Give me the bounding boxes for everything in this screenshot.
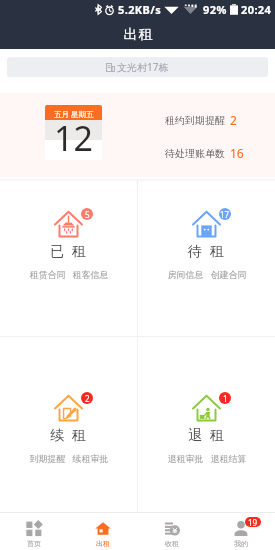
button[interactable]: 五月 星期五 xyxy=(45,105,102,160)
staticText: 退租审批 退租结算 xyxy=(167,452,247,464)
staticText: 待处理账单数 xyxy=(165,147,225,160)
staticText: 16 xyxy=(230,145,244,161)
staticText: 19 xyxy=(248,517,258,527)
staticText: 首页 xyxy=(27,539,41,548)
staticText: 92% xyxy=(203,2,227,17)
staticText: 租赁合同 租客信息 xyxy=(29,268,109,280)
staticText: 退 租 xyxy=(188,425,226,444)
staticText: 12 xyxy=(54,115,93,160)
staticText: 1 xyxy=(223,393,228,404)
button[interactable]: 19 xyxy=(206,513,275,550)
button[interactable]: 17 xyxy=(138,181,275,336)
button[interactable]: 2 xyxy=(0,337,137,512)
staticText: 续 租 xyxy=(50,425,88,444)
staticText: 5 xyxy=(85,209,90,220)
staticText: 我的 xyxy=(234,539,248,548)
staticText: 已 租 xyxy=(50,241,88,260)
button[interactable]: 租约到期提醒 xyxy=(165,112,237,128)
button[interactable]: 待处理账单数 xyxy=(165,145,244,161)
staticText: 五月 星期五 xyxy=(54,109,94,119)
button[interactable]: 出租 xyxy=(68,513,137,550)
button[interactable]: 文光村17栋 xyxy=(7,57,268,77)
staticText: 2 xyxy=(85,393,90,404)
staticText: 租约到期提醒 xyxy=(165,114,225,127)
staticText: 出租 xyxy=(96,539,110,548)
button[interactable]: 首页 xyxy=(0,513,68,550)
staticText: 待 租 xyxy=(188,241,226,260)
staticText: 文光村17栋 xyxy=(117,60,169,74)
staticText: 出租 xyxy=(123,26,153,44)
button[interactable]: 1 xyxy=(138,337,275,512)
staticText: 17 xyxy=(220,209,230,220)
staticText: 2 xyxy=(230,112,237,128)
button[interactable]: 收租 xyxy=(137,513,206,550)
staticText: 5.2KB/s xyxy=(118,2,162,17)
staticText: 房间信息 创建合同 xyxy=(167,268,247,280)
staticText: 收租 xyxy=(165,539,179,548)
button[interactable]: 5 xyxy=(0,181,137,336)
staticText: 到期提醒 续租审批 xyxy=(29,452,109,464)
staticText: 20:24 xyxy=(241,2,272,17)
